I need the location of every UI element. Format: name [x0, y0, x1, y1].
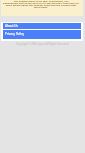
- button[interactable]: Privacy Policy: [3, 30, 81, 39]
- staticText: About Us: [5, 24, 18, 28]
- staticText: Copyright © 2024 ajq.us All Rights Reser…: [16, 42, 69, 45]
- button[interactable]: The domain ajq.us is for sale. To purcha…: [1, 0, 83, 16]
- button[interactable]: About Us: [3, 23, 81, 29]
- staticText: Privacy Policy: [5, 32, 24, 36]
- staticText: The domain ajq.us is for sale. To purcha…: [3, 0, 79, 8]
